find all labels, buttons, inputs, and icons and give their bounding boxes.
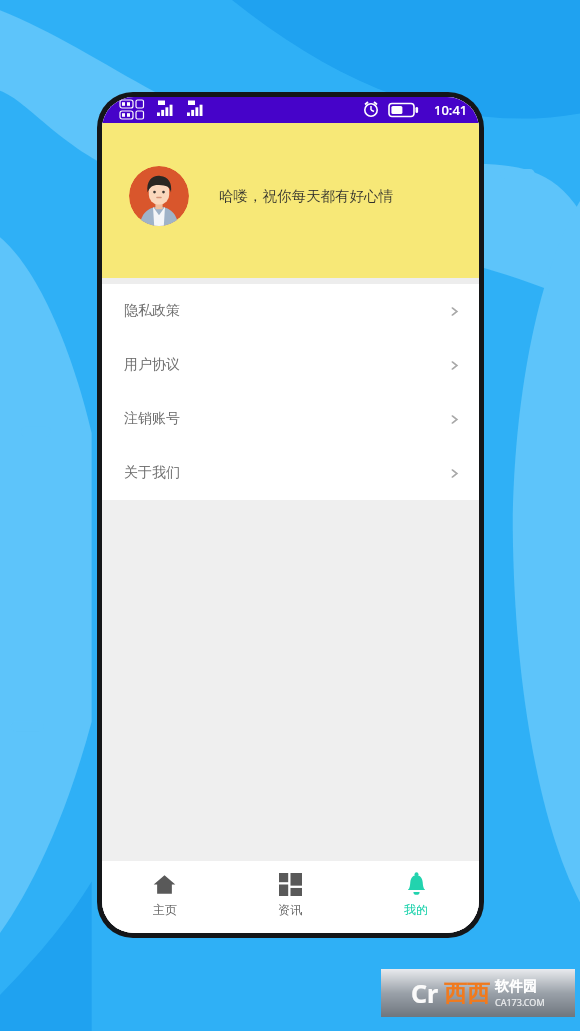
staticText: 主页 [153, 902, 177, 917]
staticText: 西西 [444, 979, 490, 1008]
staticText: 我的 [404, 902, 428, 917]
staticText: 哈喽，祝你每天都有好心情 [219, 187, 393, 205]
button[interactable]: 资讯 [227, 861, 353, 917]
staticText: 软件园 [495, 978, 537, 996]
button[interactable]: 我的 [353, 861, 479, 917]
button[interactable]: 用户协议 [102, 338, 479, 392]
staticText: 注销账号 [124, 410, 180, 428]
staticText: 关于我们 [124, 464, 180, 482]
staticText: CA173.COM [495, 996, 545, 1008]
staticText: Cr [411, 976, 439, 1010]
button[interactable]: 主页 [102, 861, 227, 917]
staticText: 隐私政策 [124, 302, 180, 320]
staticText: 资讯 [278, 902, 302, 917]
button[interactable]: 关于我们 [102, 446, 479, 500]
button[interactable]: 注销账号 [102, 392, 479, 446]
button[interactable]: 隐私政策 [102, 284, 479, 338]
staticText: 10:41 [434, 101, 468, 119]
other: Profile avatar [129, 166, 189, 226]
staticText: 用户协议 [124, 356, 180, 374]
other: Watermark CA173.COM [381, 969, 575, 1017]
